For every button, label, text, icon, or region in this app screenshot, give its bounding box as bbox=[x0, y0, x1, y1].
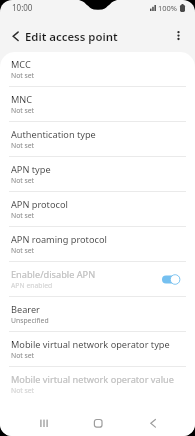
button[interactable]: Recent apps bbox=[26, 415, 62, 436]
button[interactable]: More options bbox=[166, 24, 191, 48]
staticText: Not set bbox=[11, 176, 35, 185]
button[interactable]: Authentication type bbox=[0, 122, 195, 157]
button[interactable]: Navigate up bbox=[3, 24, 28, 48]
staticText: Mobile virtual network operator type bbox=[11, 338, 170, 351]
staticText: 100% bbox=[158, 3, 178, 13]
staticText: Not set bbox=[11, 386, 35, 395]
staticText: Not set bbox=[11, 106, 35, 115]
staticText: Enable/disable APN bbox=[11, 268, 96, 281]
staticText: Not set bbox=[11, 351, 35, 360]
button[interactable]: Home bbox=[80, 415, 116, 436]
staticText: Not set bbox=[11, 246, 35, 255]
staticText: APN roaming protocol bbox=[11, 233, 107, 246]
button[interactable]: APN roaming protocol bbox=[0, 227, 195, 262]
staticText: APN protocol bbox=[11, 198, 68, 211]
button[interactable]: Mobile virtual network operator value bbox=[0, 367, 195, 402]
staticText: Edit access point bbox=[25, 29, 118, 45]
button[interactable]: Enable/disable APN bbox=[0, 262, 195, 297]
button[interactable]: Back bbox=[135, 415, 171, 436]
staticText: Not set bbox=[11, 141, 35, 150]
button[interactable]: APN protocol bbox=[0, 192, 195, 227]
staticText: Bearer bbox=[11, 303, 40, 316]
button[interactable]: Mobile virtual network operator type bbox=[0, 332, 195, 367]
button[interactable]: Enable/disable APN bbox=[162, 274, 180, 285]
button[interactable]: MCC bbox=[0, 52, 195, 87]
button[interactable]: Bearer bbox=[0, 297, 195, 332]
button[interactable]: MNC bbox=[0, 87, 195, 122]
staticText: Not set bbox=[11, 71, 35, 80]
staticText: APN type bbox=[11, 163, 51, 176]
button[interactable]: APN type bbox=[0, 157, 195, 192]
staticText: MNC bbox=[11, 93, 33, 106]
staticText: Unspecified bbox=[11, 316, 49, 325]
staticText: Mobile virtual network operator value bbox=[11, 373, 174, 386]
staticText: Authentication type bbox=[11, 128, 96, 141]
staticText: Not set bbox=[11, 211, 35, 220]
staticText: MCC bbox=[11, 58, 31, 71]
staticText: APN enabled bbox=[11, 281, 53, 290]
staticText: 10:00 bbox=[12, 2, 33, 13]
